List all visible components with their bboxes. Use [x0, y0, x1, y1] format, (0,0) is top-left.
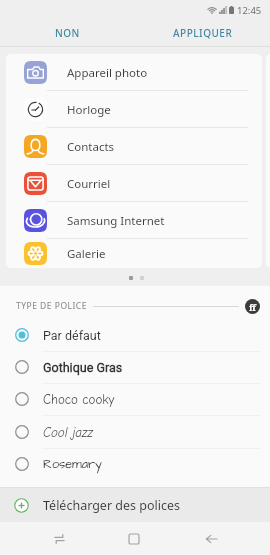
button[interactable]: Par défaut	[0, 319, 270, 351]
button[interactable]: Rosemary	[0, 448, 270, 480]
button[interactable]: Contacts	[6, 128, 262, 165]
staticText: APPLIQUER	[173, 26, 233, 40]
button[interactable]: Horloge	[6, 91, 262, 128]
staticText: Télécharger des polices	[43, 497, 181, 514]
staticText: Appareil photo	[67, 65, 148, 81]
button[interactable]: Télécharger des polices	[0, 488, 270, 522]
staticText: 12:45	[237, 4, 262, 17]
staticText: Courriel	[67, 176, 111, 192]
staticText: Horloge	[67, 102, 111, 118]
button[interactable]: Home	[115, 522, 153, 555]
button[interactable]: Courriel	[6, 165, 262, 202]
staticText: Samsung Internet	[67, 213, 165, 229]
staticText: Choco cooky	[43, 392, 115, 407]
button[interactable]: Galerie	[6, 239, 262, 268]
button[interactable]: Choco cooky	[0, 383, 270, 415]
staticText: TYPE DE POLICE	[16, 300, 87, 312]
button[interactable]: Samsung Internet	[6, 202, 262, 239]
staticText: Contacts	[67, 139, 115, 155]
button[interactable]: Recents	[40, 522, 78, 555]
button[interactable]: Back	[192, 522, 230, 555]
button[interactable]: Cool jazz	[0, 416, 270, 448]
button[interactable]: APPLIQUER	[135, 20, 270, 46]
staticText: Rosemary	[43, 456, 102, 473]
staticText: Gothique Gras	[43, 360, 123, 375]
staticText: NON	[55, 26, 80, 40]
staticText: Galerie	[67, 246, 106, 262]
button[interactable]: Font style options	[245, 299, 260, 314]
button[interactable]: Appareil photo	[6, 54, 262, 91]
staticText: Cool jazz	[43, 425, 93, 440]
staticText: ff	[249, 301, 256, 313]
button[interactable]: NON	[0, 20, 135, 46]
staticText: Par défaut	[43, 328, 101, 343]
button[interactable]: Gothique Gras	[0, 351, 270, 383]
